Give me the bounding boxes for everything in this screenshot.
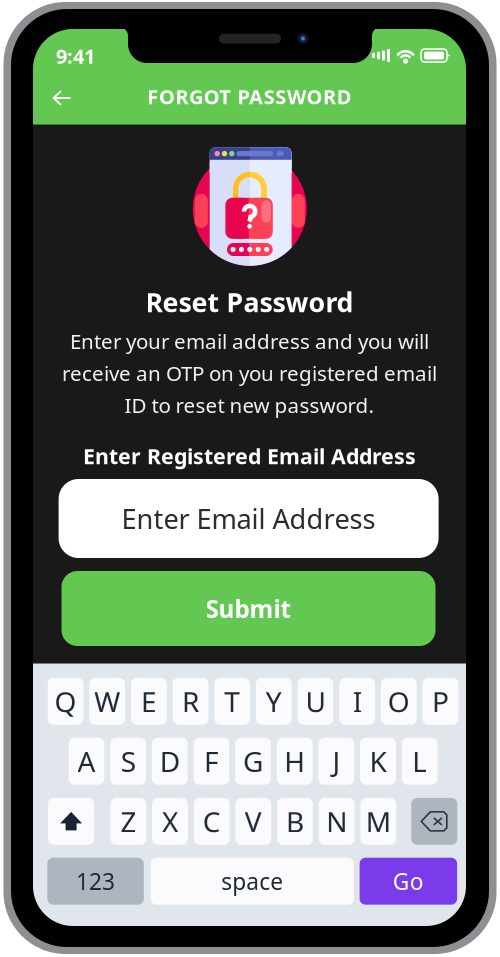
- staticText: R: [182, 683, 199, 720]
- staticText: X: [162, 803, 178, 840]
- staticText: Enter Email Address: [122, 500, 376, 537]
- staticText: M: [366, 803, 391, 840]
- staticText: T: [224, 683, 240, 720]
- button[interactable]: Z: [110, 798, 146, 845]
- button[interactable]: W: [89, 678, 125, 725]
- button[interactable]: C: [194, 798, 230, 845]
- staticText: Y: [266, 683, 282, 720]
- button[interactable]: T: [214, 678, 250, 725]
- staticText: C: [203, 803, 221, 840]
- staticText: FORGOT PASSWORD: [147, 83, 352, 110]
- button[interactable]: N: [319, 798, 355, 845]
- button[interactable]: Enter Email Address: [59, 479, 439, 558]
- button[interactable]: F: [193, 738, 229, 785]
- staticText: 123: [76, 866, 115, 896]
- staticText: V: [245, 803, 262, 840]
- button[interactable]: Delete: [411, 798, 457, 845]
- staticText: W: [94, 683, 120, 720]
- staticText: Reset Password: [145, 284, 353, 320]
- staticText: F: [204, 743, 219, 780]
- button[interactable]: Shift: [48, 798, 94, 845]
- staticText: I: [353, 683, 362, 720]
- staticText: Enter Registered Email Address: [83, 442, 416, 470]
- button[interactable]: J: [318, 738, 354, 785]
- button[interactable]: U: [298, 678, 333, 725]
- button[interactable]: X: [152, 798, 188, 845]
- staticText: Enter your email address and you will: [70, 327, 429, 355]
- staticText: D: [160, 743, 180, 780]
- staticText: Z: [120, 803, 136, 840]
- button[interactable]: A: [69, 738, 104, 785]
- button[interactable]: 123: [47, 858, 144, 905]
- staticText: P: [432, 683, 449, 720]
- staticText: J: [332, 743, 340, 780]
- button[interactable]: Submit: [61, 571, 435, 646]
- button[interactable]: E: [131, 678, 167, 725]
- staticText: S: [121, 743, 136, 780]
- button[interactable]: R: [173, 678, 208, 725]
- staticText: Q: [55, 683, 77, 720]
- staticText: A: [77, 743, 95, 780]
- button[interactable]: Y: [256, 678, 292, 725]
- staticText: K: [369, 743, 386, 780]
- button[interactable]: Go: [360, 858, 457, 905]
- button[interactable]: Q: [48, 678, 83, 725]
- staticText: B: [286, 803, 304, 840]
- staticText: Go: [393, 866, 424, 896]
- button[interactable]: M: [360, 798, 396, 845]
- staticText: L: [412, 743, 427, 780]
- button[interactable]: K: [360, 738, 396, 785]
- button[interactable]: B: [277, 798, 313, 845]
- staticText: Submit: [205, 592, 291, 625]
- staticText: U: [305, 683, 325, 720]
- button[interactable]: O: [381, 678, 417, 725]
- button[interactable]: P: [422, 678, 458, 725]
- button[interactable]: V: [235, 798, 271, 845]
- staticText: E: [141, 683, 157, 720]
- button[interactable]: I: [339, 678, 375, 725]
- staticText: O: [388, 683, 410, 720]
- button[interactable]: D: [152, 738, 188, 785]
- button[interactable]: S: [110, 738, 146, 785]
- button[interactable]: G: [235, 738, 271, 785]
- staticText: ID to reset new password.: [124, 391, 374, 419]
- button[interactable]: space: [151, 858, 354, 905]
- staticText: G: [243, 743, 263, 780]
- button[interactable]: H: [277, 738, 313, 785]
- staticText: space: [221, 866, 283, 896]
- staticText: N: [326, 803, 347, 840]
- button[interactable]: Back: [42, 78, 82, 118]
- button[interactable]: L: [402, 738, 438, 785]
- staticText: 9:41: [56, 43, 95, 69]
- staticText: receive an OTP on you registered email: [62, 359, 437, 387]
- staticText: H: [284, 743, 305, 780]
